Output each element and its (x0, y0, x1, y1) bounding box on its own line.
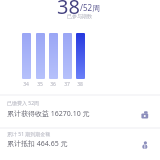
button[interactable]: 累计 51 期到期金额 (0, 127, 160, 160)
staticText: 38 (76, 81, 84, 88)
staticText: 37 (63, 81, 71, 88)
staticText: 34 (22, 81, 30, 88)
staticText: 35 (36, 81, 44, 88)
staticText: 36 (49, 81, 57, 88)
staticText: 已缴费入 52周 (7, 100, 40, 107)
other: 抵扣 (141, 141, 149, 149)
staticText: 累计抵扣 464.65 元 (7, 139, 68, 149)
staticText: /52周 (80, 2, 101, 13)
staticText: 累计 51 期到期金额 (7, 131, 51, 138)
staticText: 已参与期数 (67, 13, 92, 19)
button[interactable]: 已缴费入 52周 (0, 93, 160, 126)
staticText: 累计获得收益 16270.10 元 (7, 109, 90, 119)
staticText: 38 (57, 0, 80, 20)
other: 收益 (141, 111, 149, 119)
